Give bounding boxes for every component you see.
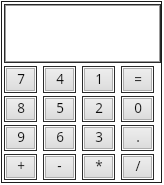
staticText: 5	[56, 99, 64, 117]
button[interactable]: 6	[46, 128, 73, 148]
button[interactable]: 7	[7, 69, 34, 90]
button[interactable]: =	[124, 69, 151, 90]
button[interactable]: 9	[7, 128, 34, 148]
staticText: 7	[17, 70, 25, 88]
button[interactable]: 8	[7, 99, 34, 119]
button[interactable]: 5	[46, 99, 73, 119]
staticText: 6	[56, 128, 64, 146]
button[interactable]: 3	[85, 128, 112, 148]
staticText: 1	[95, 70, 103, 88]
staticText: 4	[56, 70, 64, 88]
button[interactable]: +	[7, 157, 34, 177]
staticText: =	[134, 70, 142, 88]
staticText: -	[57, 157, 62, 175]
button[interactable]: 4	[46, 69, 73, 90]
staticText: 2	[95, 99, 103, 117]
button[interactable]: 0	[124, 99, 151, 119]
staticText: /	[135, 157, 141, 175]
staticText: 0	[134, 99, 142, 117]
button[interactable]: /	[124, 157, 151, 177]
staticText: *	[95, 157, 103, 175]
staticText: .	[136, 128, 140, 146]
staticText: 3	[95, 128, 103, 146]
button[interactable]: 1	[85, 69, 112, 90]
staticText: 8	[17, 99, 25, 117]
button[interactable]: *	[85, 157, 112, 177]
staticText: +	[17, 157, 25, 175]
button[interactable]: 2	[85, 99, 112, 119]
button[interactable]: -	[46, 157, 73, 177]
staticText: 9	[17, 128, 25, 146]
button[interactable]: .	[124, 128, 151, 148]
